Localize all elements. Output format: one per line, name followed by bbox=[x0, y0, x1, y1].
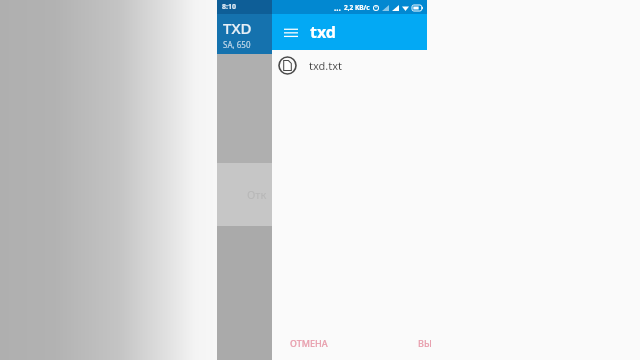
button[interactable]: Open navigation menu bbox=[278, 19, 304, 45]
staticText: 8:10 bbox=[222, 2, 236, 12]
staticText: ВЫ bbox=[418, 337, 432, 349]
staticText: txd bbox=[310, 21, 336, 43]
staticText: … bbox=[334, 2, 341, 13]
staticText: Откры bbox=[247, 187, 272, 202]
staticText: ОТМЕНА bbox=[290, 337, 328, 349]
button[interactable]: ОТМЕНА bbox=[284, 333, 334, 353]
staticText: SA, 650 textures bbox=[223, 39, 272, 50]
button[interactable]: ВЫ bbox=[412, 333, 438, 353]
button[interactable]: txd.txt bbox=[272, 50, 640, 80]
staticText: 2,2 KB/c bbox=[344, 3, 370, 12]
staticText: TXD Tool bbox=[223, 18, 272, 38]
staticText: txd.txt bbox=[309, 58, 343, 73]
